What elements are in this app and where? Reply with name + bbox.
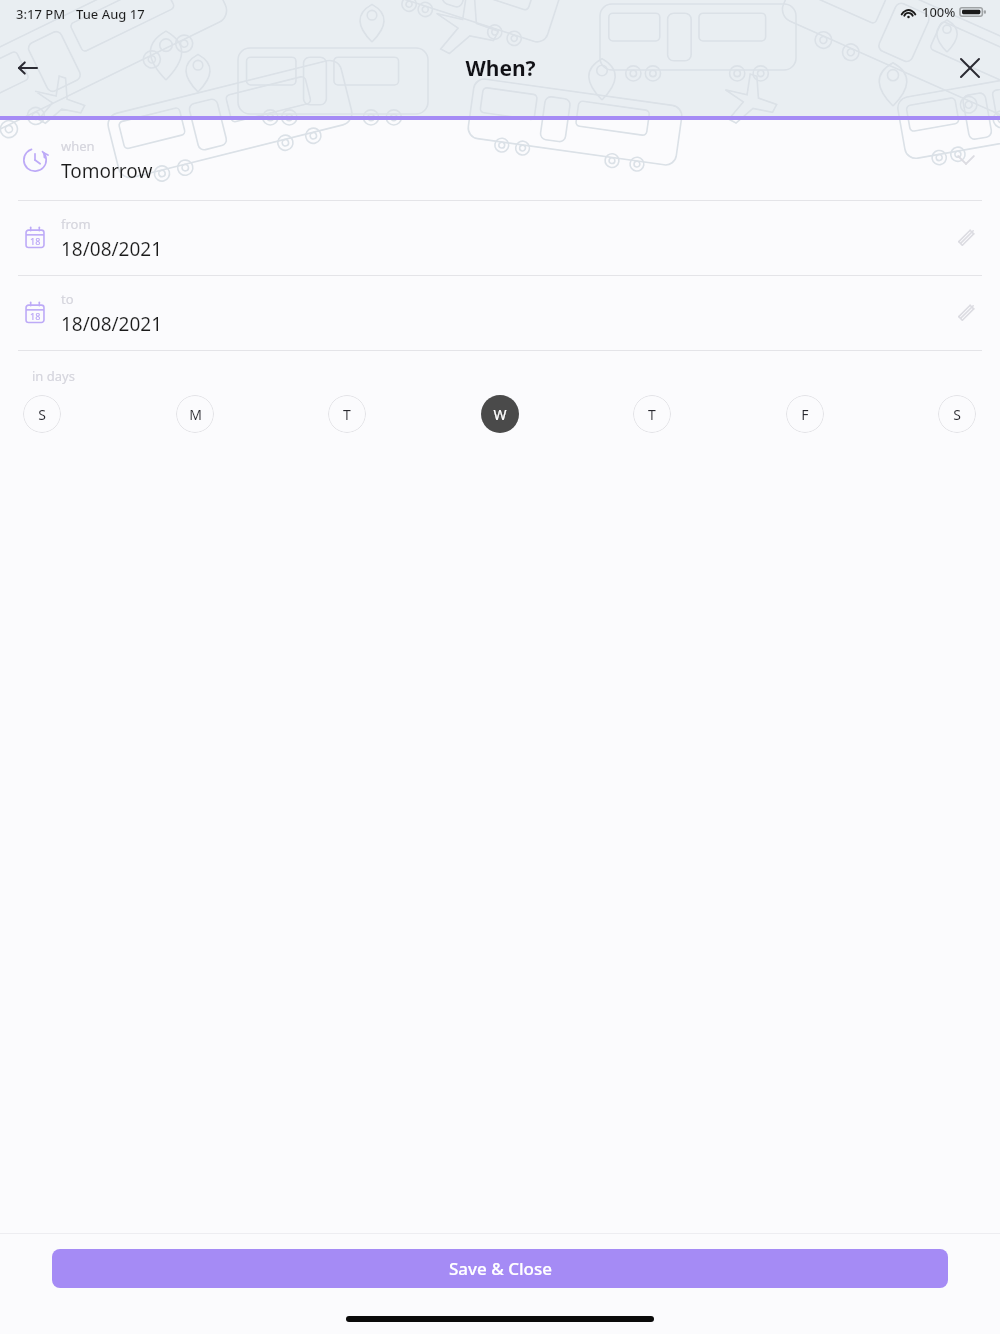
button[interactable]: 18 <box>0 276 1000 350</box>
button[interactable]: 18 <box>0 201 1000 275</box>
staticText: S <box>38 405 46 424</box>
staticText: 100% <box>922 3 956 21</box>
button[interactable]: when <box>0 120 1000 200</box>
staticText: in days <box>32 367 75 385</box>
staticText: 18 <box>30 310 41 322</box>
staticText: Tomorrow <box>61 158 153 184</box>
button[interactable]: Save & Close <box>52 1249 948 1288</box>
staticText: Save & Close <box>449 1257 552 1280</box>
button[interactable]: S <box>938 395 976 433</box>
staticText: S <box>953 405 961 424</box>
staticText: T <box>343 405 351 424</box>
staticText: T <box>648 405 656 424</box>
button[interactable]: T <box>328 395 366 433</box>
staticText: W <box>493 405 507 424</box>
staticText: 18 <box>30 235 41 247</box>
button[interactable]: S <box>23 395 61 433</box>
staticText: from <box>61 215 91 233</box>
other: Edit to date <box>951 298 981 328</box>
other: Expand when options <box>951 145 981 175</box>
staticText: 18/08/2021 <box>61 311 163 337</box>
staticText: to <box>61 290 74 308</box>
staticText: M <box>189 405 202 424</box>
other: Edit from date <box>951 223 981 253</box>
staticText: When? <box>465 54 536 83</box>
button[interactable]: Close <box>955 53 985 83</box>
staticText: F <box>801 405 809 424</box>
button[interactable]: F <box>786 395 824 433</box>
staticText: when <box>61 137 95 155</box>
button[interactable]: M <box>176 395 214 433</box>
staticText: Tue Aug 17 <box>76 5 145 23</box>
button[interactable]: W <box>481 395 519 433</box>
staticText: 18/08/2021 <box>61 236 163 262</box>
button[interactable]: T <box>633 395 671 433</box>
staticText: 3:17 PM <box>16 5 66 23</box>
button[interactable]: Back <box>13 53 43 83</box>
